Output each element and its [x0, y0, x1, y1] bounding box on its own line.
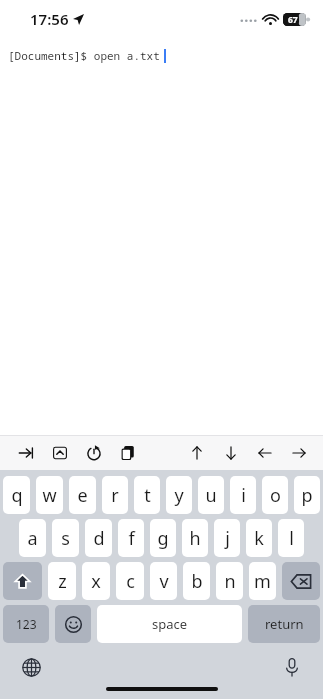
button[interactable]: p	[294, 476, 320, 514]
staticText: i	[241, 483, 246, 508]
button[interactable]: space	[97, 605, 242, 643]
button[interactable]: z	[48, 562, 76, 600]
button[interactable]: Dictation	[279, 654, 305, 680]
staticText: a	[27, 526, 38, 551]
staticText: k	[254, 526, 264, 551]
staticText: e	[77, 483, 88, 508]
button[interactable]: Control	[50, 443, 70, 463]
button[interactable]: a	[19, 519, 46, 557]
staticText: x	[91, 569, 101, 594]
button[interactable]: Shift	[3, 562, 42, 600]
staticText: t	[144, 483, 151, 508]
button[interactable]: d	[85, 519, 112, 557]
button[interactable]: e	[69, 476, 96, 514]
button[interactable]: x	[82, 562, 110, 600]
button[interactable]: Paste	[118, 443, 138, 463]
button[interactable]: b	[183, 562, 210, 600]
staticText: r	[111, 483, 119, 508]
staticText: c	[126, 569, 135, 594]
button[interactable]: return	[248, 605, 320, 643]
button[interactable]: h	[182, 519, 208, 557]
button[interactable]: k	[246, 519, 272, 557]
button[interactable]: History	[84, 443, 104, 463]
button[interactable]: i	[230, 476, 256, 514]
staticText: q	[11, 483, 23, 508]
button[interactable]: o	[262, 476, 288, 514]
staticText: p	[301, 483, 313, 508]
button[interactable]: q	[3, 476, 30, 514]
button[interactable]: c	[116, 562, 144, 600]
button[interactable]: j	[214, 519, 240, 557]
button[interactable]: Backspace	[282, 562, 320, 600]
button[interactable]: Left	[255, 443, 275, 463]
button[interactable]: Emoji	[55, 605, 91, 643]
button[interactable]: u	[198, 476, 224, 514]
staticText: 17:56	[30, 9, 69, 29]
button[interactable]: g	[150, 519, 176, 557]
staticText: f	[128, 526, 135, 551]
button[interactable]: l	[278, 519, 304, 557]
button[interactable]: Right	[289, 443, 309, 463]
staticText: d	[93, 526, 105, 551]
staticText: w	[42, 483, 57, 508]
staticText: v	[159, 569, 169, 594]
staticText: o	[270, 483, 281, 508]
staticText: n	[224, 569, 236, 594]
staticText: g	[157, 526, 169, 551]
staticText: m	[254, 569, 271, 594]
staticText: y	[174, 483, 184, 508]
staticText: [Documents]$ open a.txt	[8, 48, 160, 63]
staticText: z	[58, 569, 67, 594]
button[interactable]: w	[36, 476, 63, 514]
staticText: space	[152, 615, 188, 633]
button[interactable]: Up	[187, 443, 207, 463]
staticText: 123	[16, 616, 37, 632]
button[interactable]: f	[118, 519, 144, 557]
button[interactable]: Tab	[16, 443, 36, 463]
button[interactable]: r	[102, 476, 128, 514]
button[interactable]: m	[249, 562, 276, 600]
button[interactable]: v	[150, 562, 177, 600]
staticText: b	[191, 569, 203, 594]
button[interactable]: Down	[221, 443, 241, 463]
button[interactable]: 123	[3, 605, 49, 643]
button[interactable]: s	[52, 519, 79, 557]
staticText: u	[205, 483, 217, 508]
button[interactable]: Change keyboard	[18, 654, 44, 680]
staticText: return	[265, 615, 304, 633]
staticText: 67	[288, 14, 298, 26]
staticText: j	[225, 526, 230, 551]
button[interactable]: n	[216, 562, 243, 600]
staticText: l	[289, 526, 294, 551]
button[interactable]: y	[166, 476, 192, 514]
staticText: s	[61, 526, 70, 551]
button[interactable]: t	[134, 476, 160, 514]
staticText: h	[189, 526, 201, 551]
